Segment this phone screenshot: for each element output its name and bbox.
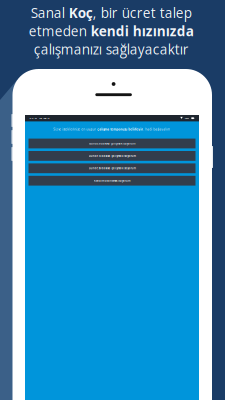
button[interactable]: Günde 15 dakika çalışmak istiyorum xyxy=(28,151,195,161)
staticText: 9:41 AM xyxy=(29,117,37,120)
button[interactable]: Günde 30 dakika çalışmak istiyorum xyxy=(28,163,195,173)
staticText: çalışmanızı sağlayacaktır xyxy=(34,40,189,58)
staticText: 100% xyxy=(184,117,189,120)
staticText: Günde 15 dakika çalışmak istiyorum xyxy=(88,154,135,158)
staticText: Kendim belirlemek istiyorum xyxy=(94,179,130,182)
staticText: etmeden kendi hızınızda xyxy=(29,22,194,40)
button[interactable]: Kendim belirlemek istiyorum xyxy=(28,176,195,186)
staticText: Siz ve isteklerinize en uygun çalışma te… xyxy=(53,127,170,131)
staticText: Sanal Koç, bir ücret talep xyxy=(31,4,192,22)
staticText: Günde 30 dakika çalışmak istiyorum xyxy=(88,166,135,170)
button[interactable]: Günde 6 dakika çalışmak istiyorum xyxy=(28,139,195,148)
staticText: Günde 6 dakika çalışmak istiyorum xyxy=(89,142,135,145)
staticText: Sat Aug 10 xyxy=(39,117,49,120)
